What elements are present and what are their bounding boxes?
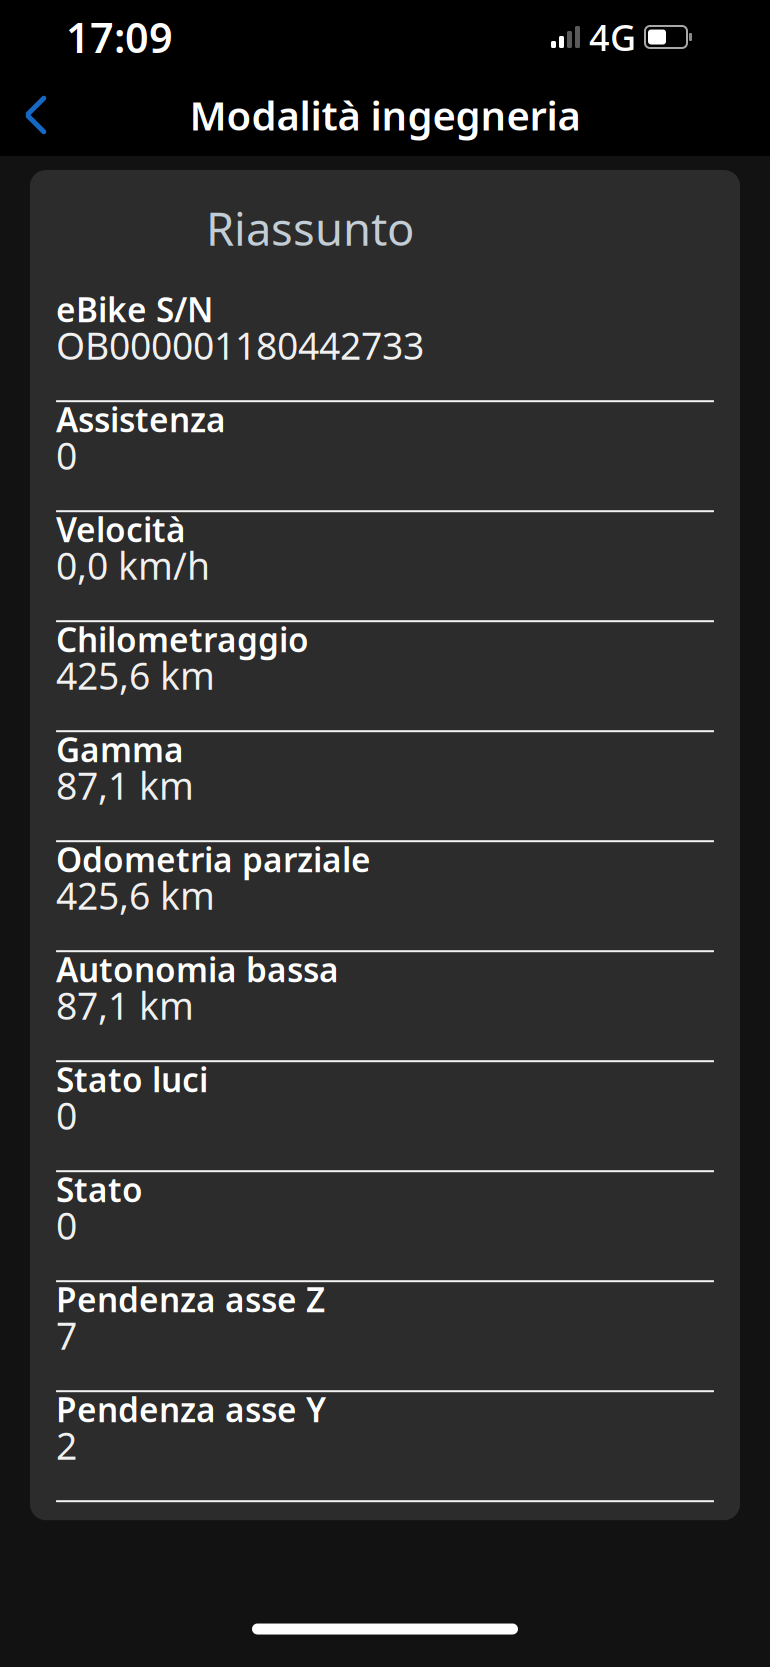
- staticText: 0: [56, 1090, 77, 1140]
- button[interactable]: Back: [0, 83, 72, 147]
- staticText: 425,6 km: [56, 870, 215, 920]
- staticText: Velocità: [56, 507, 186, 551]
- staticText: 87,1 km: [56, 980, 194, 1030]
- staticText: Autonomia bassa: [56, 947, 339, 991]
- staticText: Pendenza asse Y: [56, 1387, 326, 1431]
- staticText: Gamma: [56, 727, 184, 771]
- staticText: OB000001180442733: [56, 320, 424, 370]
- staticText: 4G: [589, 13, 636, 61]
- staticText: 2: [56, 1420, 77, 1470]
- staticText: Odometria parziale: [56, 837, 371, 881]
- staticText: 0: [56, 430, 77, 480]
- staticText: Chilometraggio: [56, 617, 309, 661]
- staticText: 87,1 km: [56, 760, 194, 810]
- staticText: 0: [56, 1200, 77, 1250]
- staticText: Pendenza asse Z: [56, 1277, 325, 1321]
- staticText: Stato: [56, 1167, 143, 1211]
- staticText: eBike S/N: [56, 287, 213, 331]
- staticText: Riassunto: [206, 198, 414, 258]
- staticText: 0,0 km/h: [56, 540, 210, 590]
- staticText: Assistenza: [56, 397, 226, 441]
- staticText: 7: [56, 1310, 77, 1360]
- staticText: Stato luci: [56, 1057, 208, 1101]
- staticText: Modalità ingegneria: [189, 88, 580, 141]
- staticText: 17:09: [66, 10, 173, 64]
- staticText: 425,6 km: [56, 650, 215, 700]
